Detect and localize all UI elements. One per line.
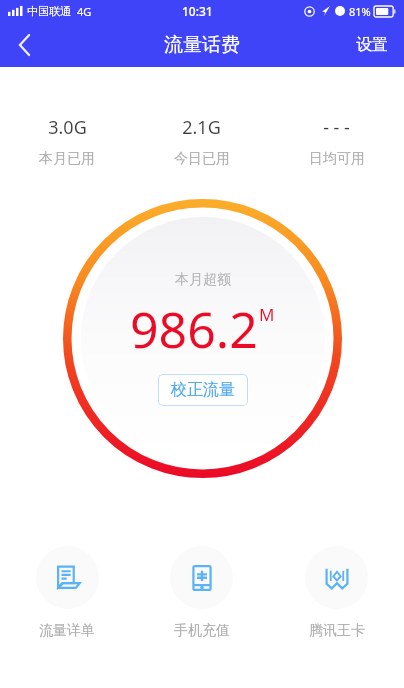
staticText: 986.2 <box>130 295 258 363</box>
button[interactable]: - - - <box>269 115 404 168</box>
staticText: 3.0G <box>48 115 87 140</box>
button[interactable]: 手机充值 <box>134 546 269 640</box>
staticText: 本月已用 <box>39 150 95 168</box>
staticText: 设置 <box>356 35 388 55</box>
staticText: 今日已用 <box>174 150 230 168</box>
staticText: 腾讯王卡 <box>309 622 365 640</box>
staticText: 手机充值 <box>174 622 230 640</box>
button[interactable]: 2.1G <box>134 115 269 168</box>
staticText: - - - <box>323 115 350 140</box>
staticText: 10:31 <box>182 3 213 19</box>
staticText: M <box>259 303 275 326</box>
staticText: 日均可用 <box>309 150 365 168</box>
staticText: 中国联通 <box>27 4 71 18</box>
staticText: 流量详单 <box>39 622 95 640</box>
button[interactable]: Back <box>0 22 48 67</box>
button[interactable]: 腾讯王卡 <box>269 546 404 640</box>
button[interactable]: 设置 <box>340 22 404 67</box>
staticText: 2.1G <box>182 115 221 140</box>
button[interactable]: 流量详单 <box>0 546 134 640</box>
staticText: 81% <box>349 4 371 19</box>
staticText: 本月超额 <box>175 271 231 289</box>
button[interactable]: 校正流量 <box>157 373 249 407</box>
staticText: 校正流量 <box>171 380 235 400</box>
staticText: 4G <box>77 4 92 19</box>
staticText: 流量话费 <box>164 33 240 57</box>
button[interactable]: 3.0G <box>0 115 134 168</box>
